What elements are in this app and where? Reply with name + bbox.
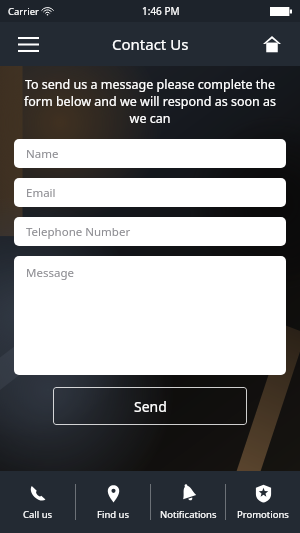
button[interactable]: Email bbox=[14, 178, 286, 207]
button[interactable]: Promotions bbox=[226, 471, 300, 533]
staticText: To send us a message please complete the… bbox=[14, 76, 286, 127]
staticText: Carrier bbox=[8, 5, 39, 18]
staticText: Telephone Number bbox=[26, 224, 131, 240]
button[interactable]: Call us bbox=[0, 471, 75, 533]
button[interactable]: Home bbox=[254, 26, 290, 62]
button[interactable]: Menu bbox=[10, 26, 46, 62]
button[interactable]: Send bbox=[53, 387, 247, 425]
button[interactable]: Message bbox=[14, 256, 286, 375]
staticText: Send bbox=[134, 397, 167, 416]
staticText: Call us bbox=[23, 508, 53, 521]
staticText: Contact Us bbox=[112, 34, 189, 54]
staticText: Notifications bbox=[160, 508, 217, 521]
staticText: Message bbox=[26, 265, 74, 281]
staticText: Find us bbox=[97, 508, 129, 521]
button[interactable]: Notifications bbox=[151, 471, 225, 533]
staticText: Email bbox=[26, 185, 56, 201]
staticText: Promotions bbox=[237, 508, 289, 521]
button[interactable]: Telephone Number bbox=[14, 217, 286, 246]
staticText: 1:46 PM bbox=[142, 4, 180, 18]
button[interactable]: Find us bbox=[76, 471, 150, 533]
staticText: Name bbox=[26, 146, 59, 162]
button[interactable]: Name bbox=[14, 139, 286, 168]
